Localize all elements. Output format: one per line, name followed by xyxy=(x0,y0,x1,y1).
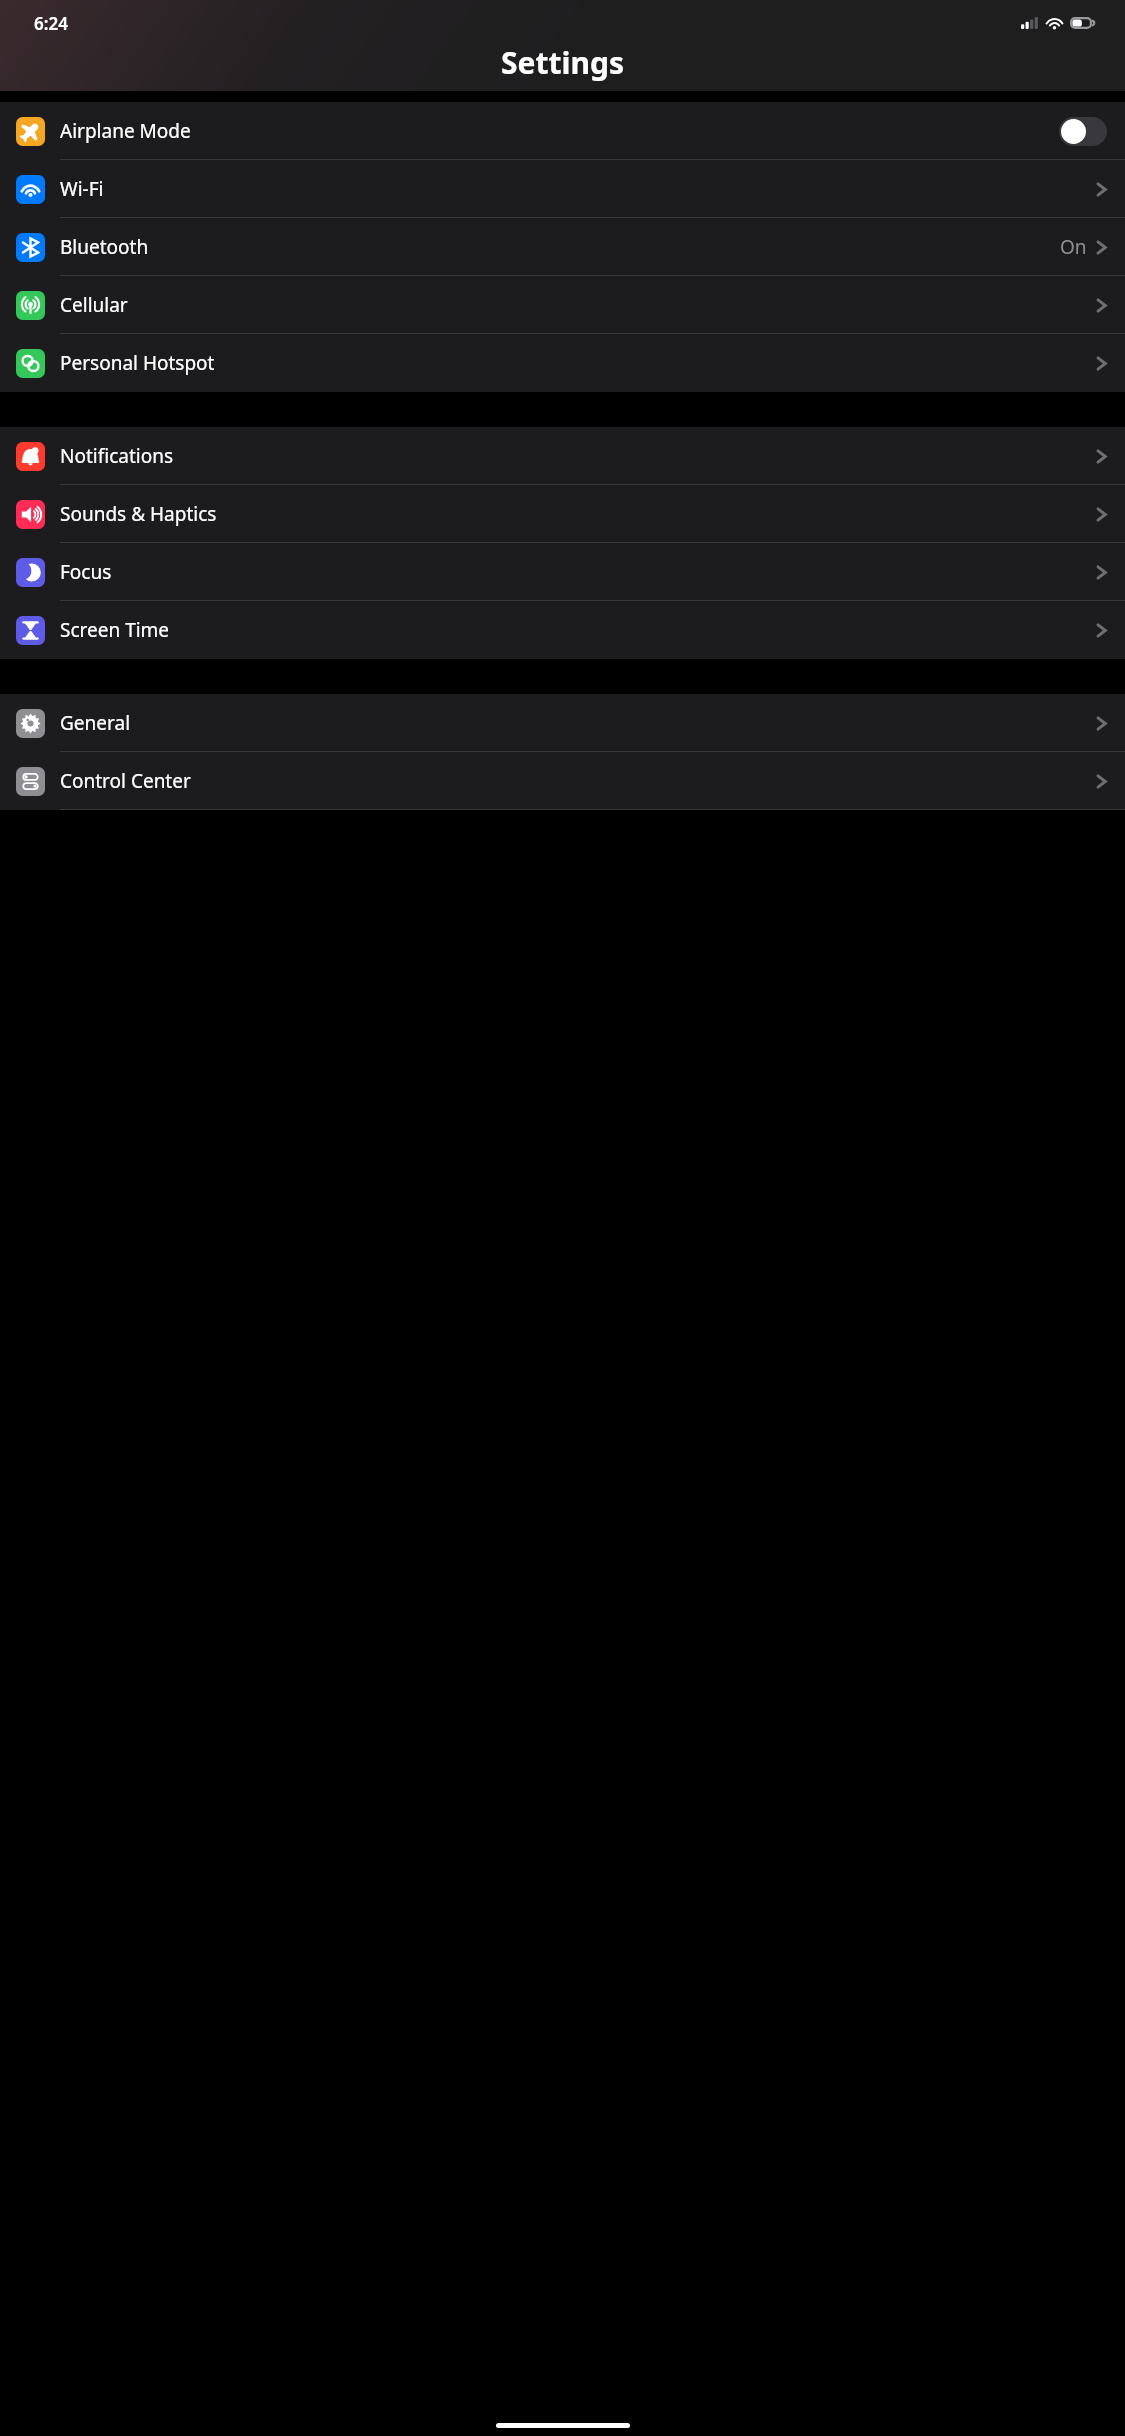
staticText: Focus xyxy=(60,559,1096,585)
staticText: Airplane Mode xyxy=(60,118,1059,144)
button[interactable]: Personal Hotspot xyxy=(0,334,1125,392)
button[interactable]: Bluetooth xyxy=(0,218,1125,276)
staticText: General xyxy=(60,710,1096,736)
button[interactable]: Control Center xyxy=(0,752,1125,810)
staticText: Screen Time xyxy=(60,617,1096,643)
button[interactable]: Sounds & Haptics xyxy=(0,485,1125,543)
button[interactable]: Airplane Mode toggle xyxy=(1059,117,1107,146)
staticText: Bluetooth xyxy=(60,234,1060,260)
button[interactable]: Wi-Fi xyxy=(0,160,1125,218)
button[interactable]: Cellular xyxy=(0,276,1125,334)
button[interactable]: Airplane Mode xyxy=(0,102,1125,160)
staticText: Sounds & Haptics xyxy=(60,501,1096,527)
staticText: Personal Hotspot xyxy=(60,350,1096,376)
staticText: On xyxy=(1060,234,1087,260)
button[interactable]: Focus xyxy=(0,543,1125,601)
staticText: Cellular xyxy=(60,292,1096,318)
staticText: Wi-Fi xyxy=(60,176,1096,202)
staticText: 6:24 xyxy=(34,12,68,35)
staticText: Control Center xyxy=(60,768,1096,794)
button[interactable]: Notifications xyxy=(0,427,1125,485)
button[interactable]: Screen Time xyxy=(0,601,1125,659)
staticText: Settings xyxy=(0,42,1125,83)
staticText: Notifications xyxy=(60,443,1096,469)
button[interactable]: General xyxy=(0,694,1125,752)
